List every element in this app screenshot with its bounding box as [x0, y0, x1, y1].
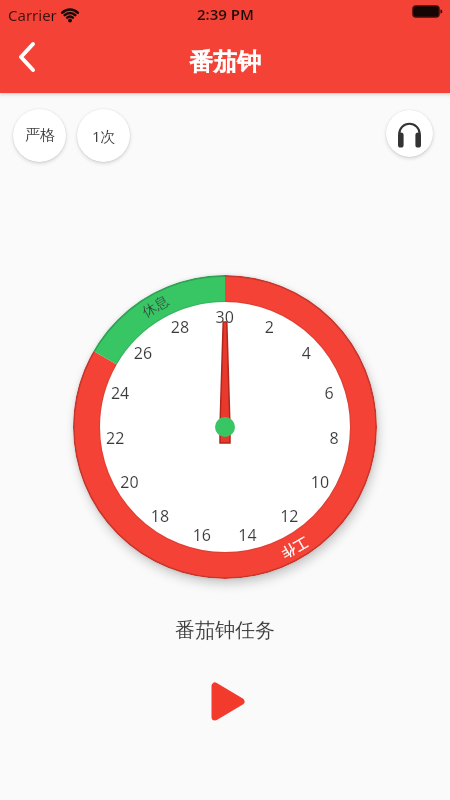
staticText: 2:39 PM: [197, 4, 254, 24]
staticText: 番茄钟任务: [175, 618, 275, 643]
staticText: 番茄钟: [189, 47, 261, 77]
staticText: 严格: [25, 126, 55, 145]
staticText: 1次: [92, 126, 116, 146]
staticText: Carrier: [8, 5, 57, 25]
